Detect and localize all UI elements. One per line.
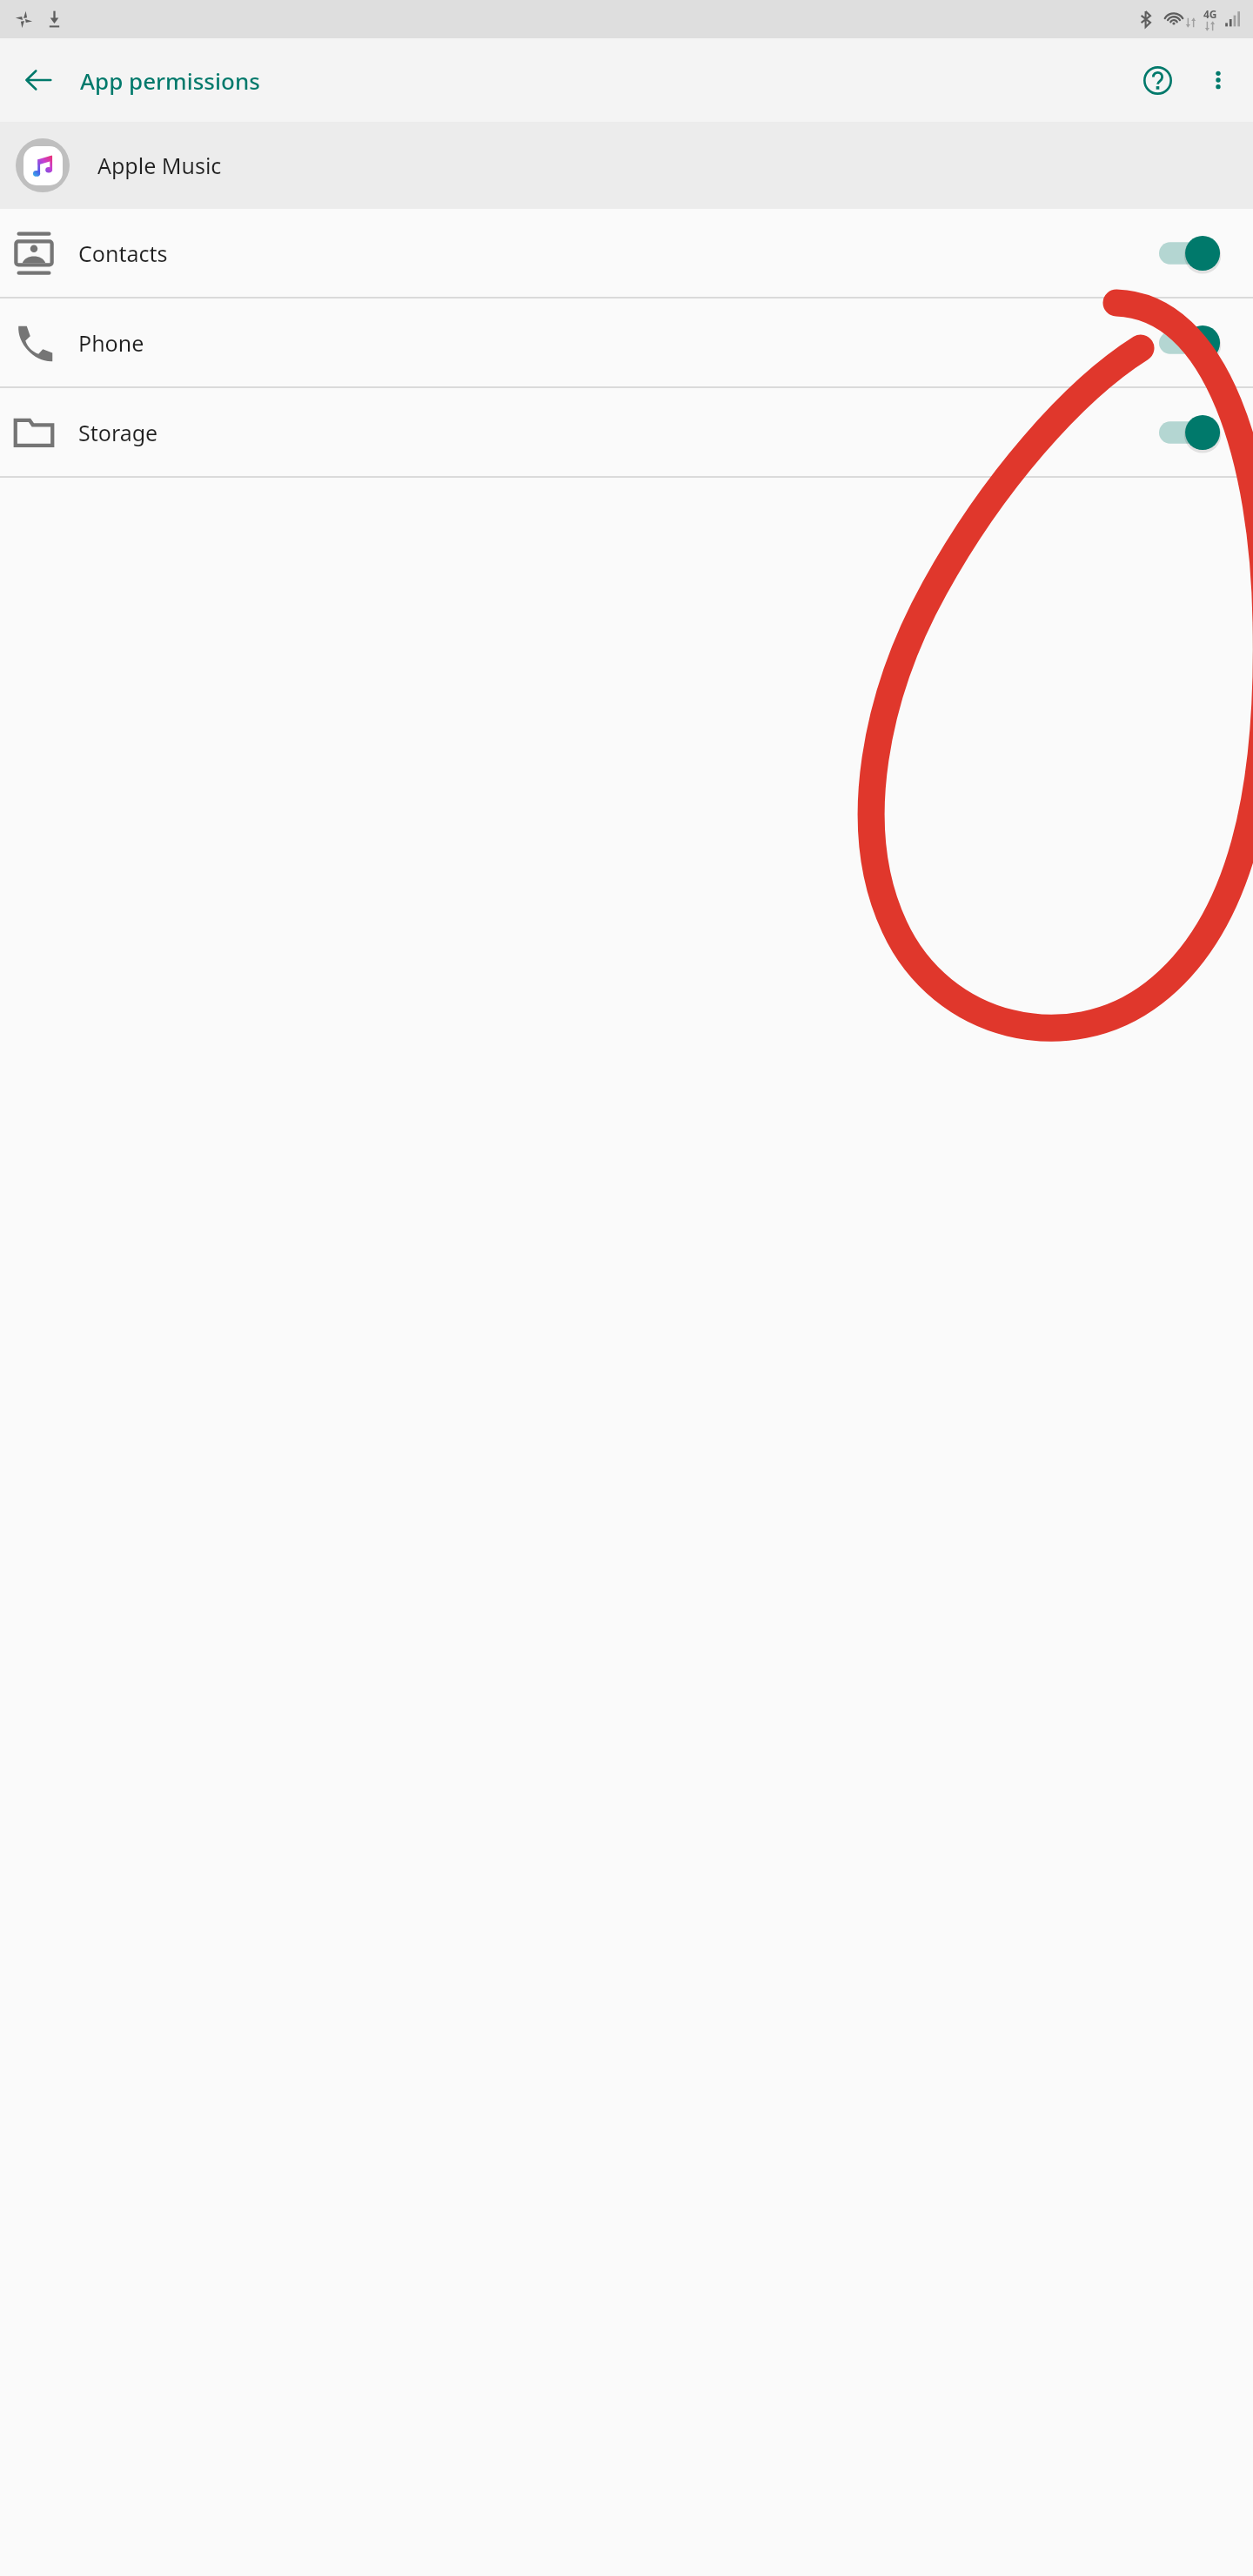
button[interactable]: Contacts permission, on	[1159, 228, 1232, 278]
button[interactable]: Help	[1126, 49, 1189, 111]
staticText: Contacts	[78, 238, 168, 268]
button[interactable]: Phone	[0, 299, 1253, 386]
button[interactable]: Apple Music	[0, 122, 1253, 209]
button[interactable]: Storage permission, on	[1159, 407, 1232, 458]
staticText: 4G	[1203, 7, 1217, 21]
staticText: Apple Music	[97, 151, 222, 180]
button[interactable]: More options	[1189, 50, 1248, 110]
button[interactable]: Storage	[0, 388, 1253, 476]
button[interactable]: Phone permission, on	[1159, 318, 1232, 368]
button[interactable]: Back	[7, 49, 70, 111]
staticText: Storage	[78, 418, 158, 447]
staticText: App permissions	[80, 65, 260, 96]
button[interactable]: Contacts	[0, 209, 1253, 297]
staticText: Phone	[78, 328, 144, 358]
